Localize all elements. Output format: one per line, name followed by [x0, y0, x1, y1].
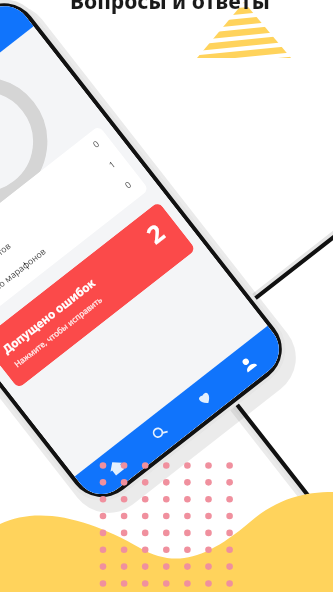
button[interactable]: Допущено ошибок — [0, 201, 196, 389]
button[interactable]: Пройдено тестов — [0, 125, 149, 329]
button[interactable]: Favourites — [179, 373, 230, 423]
staticText: Нажмите, чтобы исправить — [12, 294, 104, 369]
button[interactable]: Пройдено тестов — [0, 132, 106, 278]
button[interactable]: Пройдено марафонов — [0, 173, 138, 319]
staticText: Допущено ошибок — [0, 275, 98, 357]
button[interactable]: Profile — [223, 338, 274, 389]
button[interactable]: Решено билетов — [0, 152, 122, 298]
button[interactable]: Home — [91, 442, 141, 492]
staticText: 0 — [122, 178, 134, 191]
staticText: Пройдено марафонов — [0, 245, 49, 313]
button[interactable]: Search — [135, 407, 185, 458]
staticText: 1 — [106, 158, 118, 171]
staticText: Решено билетов — [0, 239, 13, 293]
button[interactable] — [0, 0, 34, 177]
staticText: 0 — [90, 137, 102, 150]
staticText: 2 — [139, 216, 171, 251]
staticText: Вопросы и ответы — [70, 0, 270, 16]
